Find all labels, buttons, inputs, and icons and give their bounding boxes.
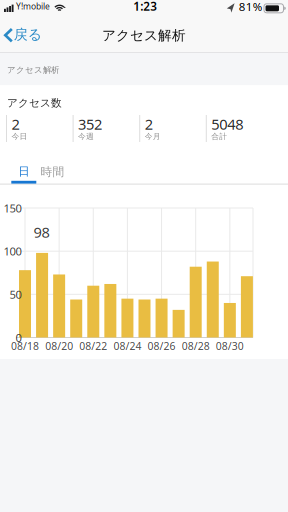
staticText: 08/20 <box>45 339 73 353</box>
staticText: 2 <box>11 114 19 134</box>
staticText: 今月 <box>145 132 161 141</box>
staticText: 100 <box>3 244 21 259</box>
staticText: 戻る <box>14 26 42 43</box>
button[interactable]: 戻る <box>2 26 46 46</box>
staticText: 50 <box>9 287 21 302</box>
staticText: 08/18 <box>11 339 39 353</box>
staticText: アクセス解析 <box>102 27 186 44</box>
staticText: 352 <box>78 114 102 134</box>
staticText: 5048 <box>211 114 243 134</box>
button[interactable]: 時間 <box>38 163 66 181</box>
staticText: Y!mobile <box>16 1 50 12</box>
staticText: 時間 <box>40 165 64 179</box>
staticText: 合計 <box>211 132 227 141</box>
staticText: 08/30 <box>216 339 244 353</box>
staticText: アクセス解析 <box>7 65 59 75</box>
staticText: 今日 <box>11 132 27 141</box>
staticText: 今週 <box>78 132 94 141</box>
staticText: 日 <box>18 164 29 179</box>
staticText: 1:23 <box>133 0 157 14</box>
staticText: 08/26 <box>148 339 176 353</box>
staticText: アクセス数 <box>7 96 62 109</box>
button[interactable]: 日 <box>11 164 36 184</box>
staticText: 08/22 <box>79 339 107 353</box>
staticText: 81% <box>239 0 263 14</box>
staticText: 0 <box>15 330 21 345</box>
staticText: 08/24 <box>113 339 141 353</box>
staticText: 150 <box>3 200 21 215</box>
staticText: 08/28 <box>182 339 210 353</box>
staticText: 2 <box>145 114 153 134</box>
staticText: 98 <box>33 222 49 242</box>
